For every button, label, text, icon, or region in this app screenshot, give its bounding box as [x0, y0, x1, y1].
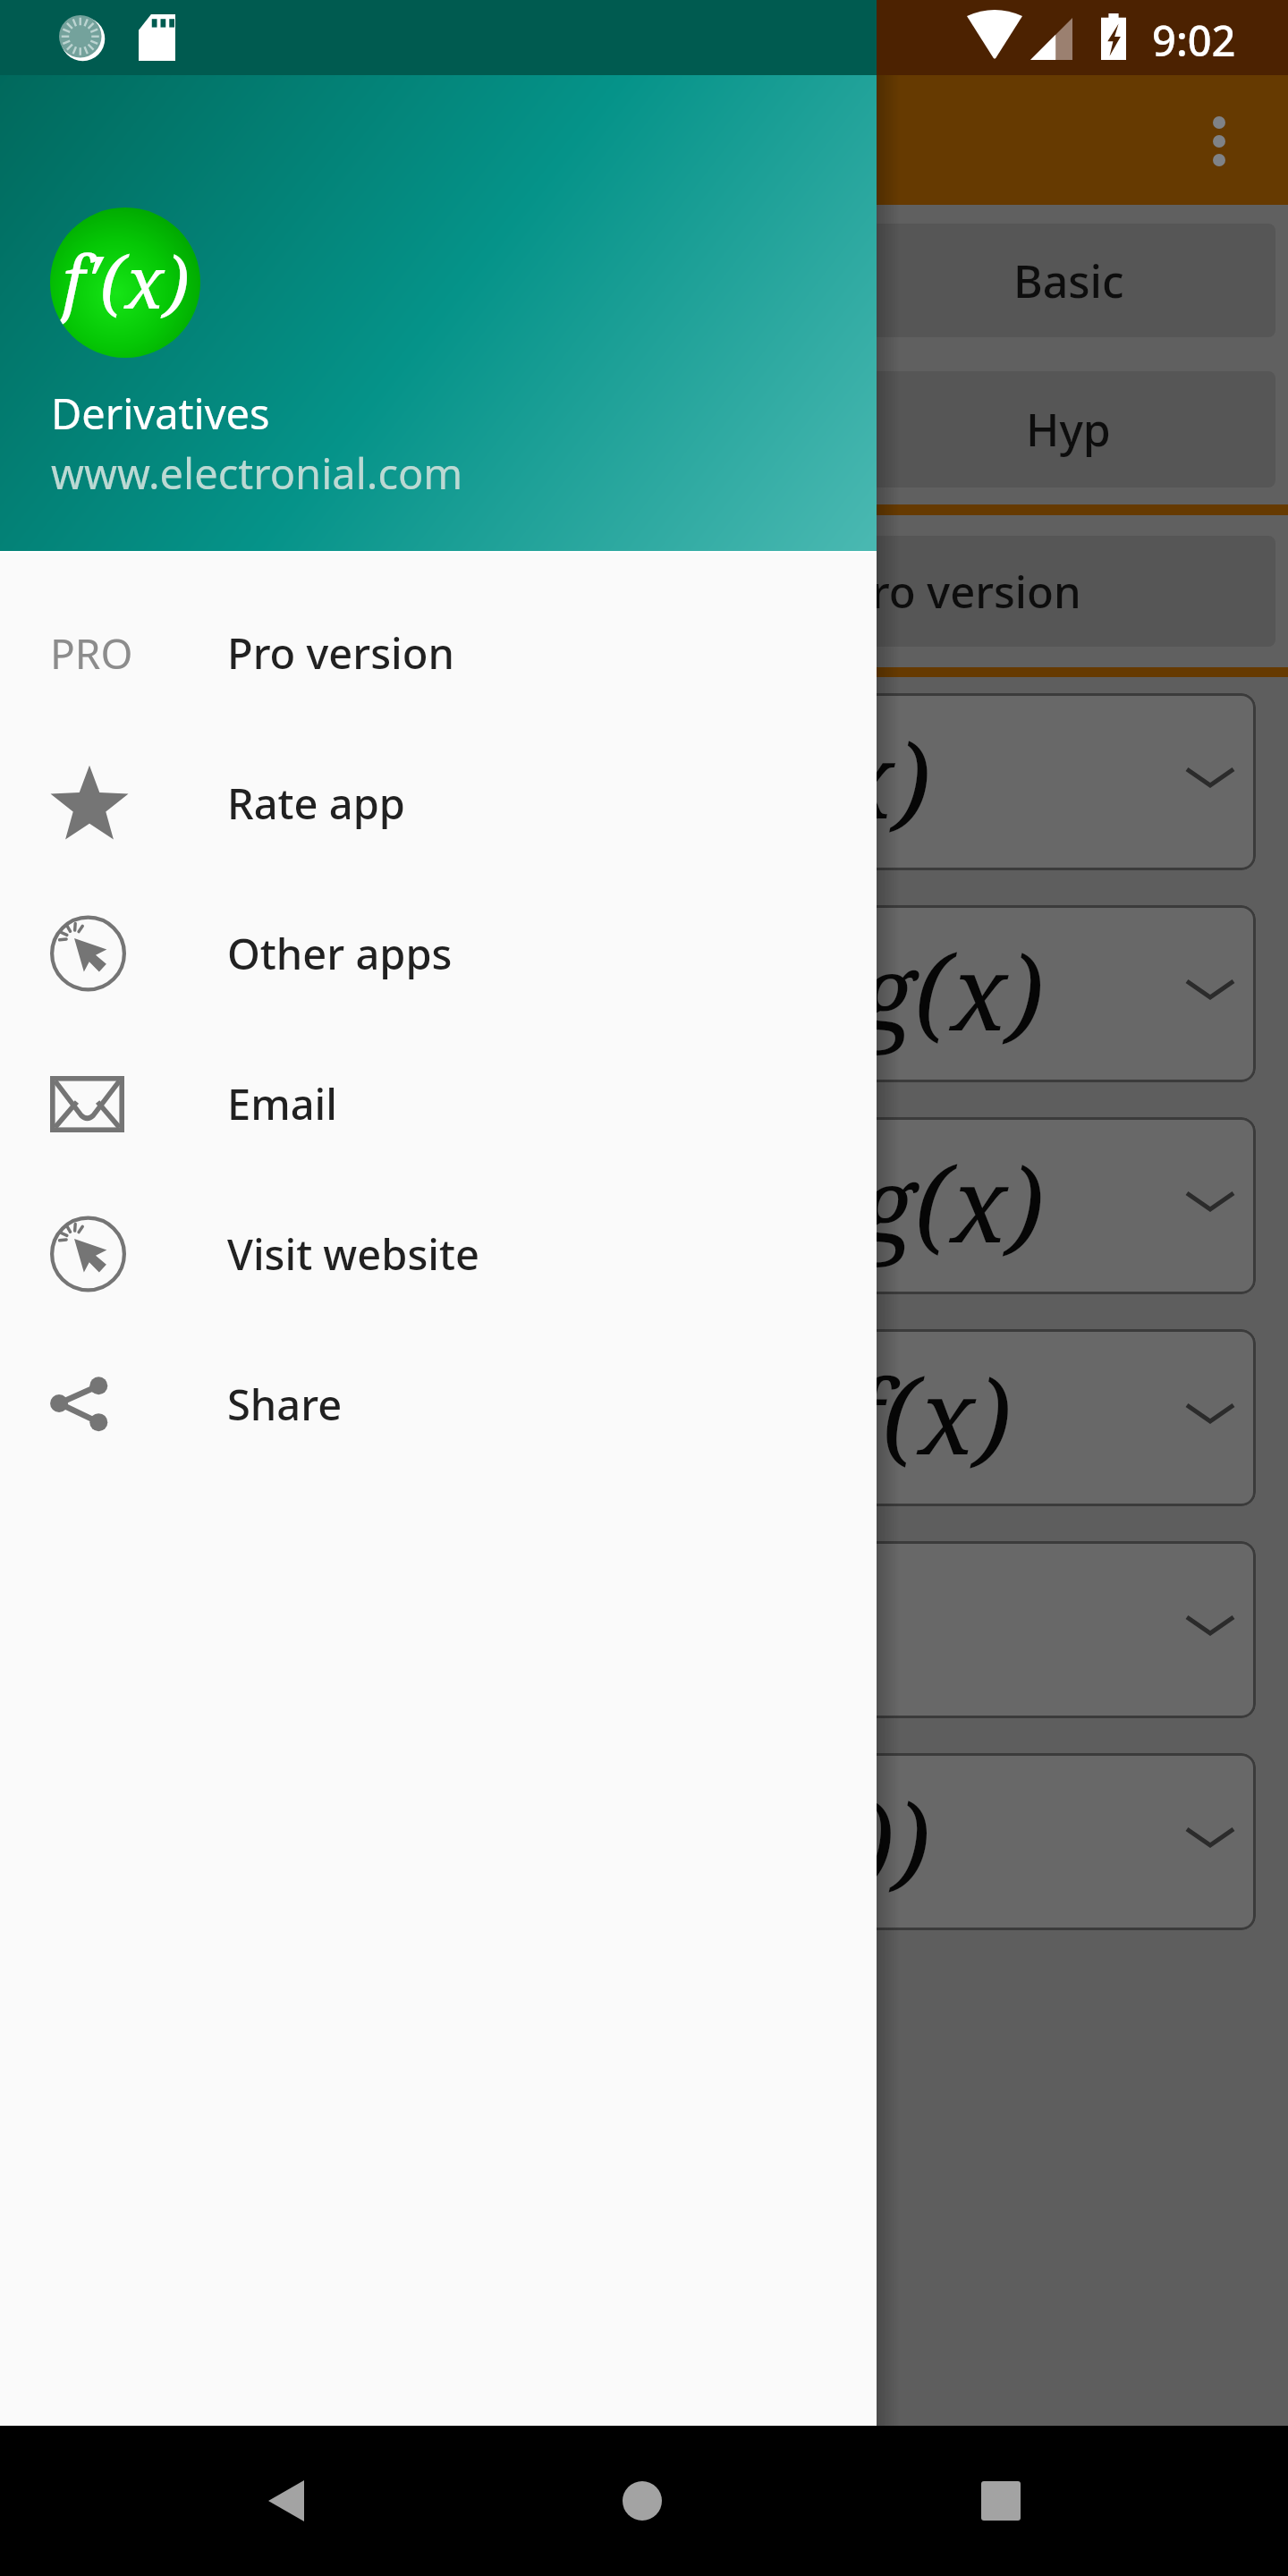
button[interactable]: More options	[1165, 88, 1273, 195]
button[interactable]: f(x)·g(x)	[32, 693, 1256, 870]
staticText: Derivatives	[51, 385, 270, 442]
button[interactable]: f(g(x))	[32, 1753, 1256, 1930]
staticText: 9:02	[1152, 12, 1236, 69]
button[interactable]: Category	[436, 224, 851, 337]
button[interactable]: f(x)+g(x)	[32, 905, 1256, 1082]
button[interactable]: Back	[215, 2426, 358, 2576]
staticText: Share	[227, 1376, 343, 1433]
staticText: Pro version	[227, 624, 454, 682]
staticText: f(x)+g(x)	[638, 919, 1044, 1061]
button[interactable]: c·f(x)	[32, 1329, 1256, 1506]
staticText: c·f(x)	[769, 1343, 1012, 1485]
button[interactable]: f(x)−g(x)	[32, 1117, 1256, 1294]
staticText: f(x)·g(x)	[553, 708, 930, 849]
button[interactable]: Category	[436, 371, 851, 487]
staticText: Visit website	[227, 1225, 479, 1283]
button[interactable]: Category	[13, 224, 426, 337]
button[interactable]: Home	[571, 2426, 714, 2576]
button[interactable]: Share	[0, 1329, 877, 1479]
button[interactable]: Other apps	[0, 878, 877, 1029]
button[interactable]: Visit website	[0, 1179, 877, 1329]
staticText: Basic	[1013, 250, 1124, 311]
staticText: Rate app	[227, 775, 405, 832]
button[interactable]: Email	[0, 1029, 877, 1179]
button[interactable]: Pro version	[13, 536, 1275, 647]
staticText: Other apps	[227, 925, 453, 982]
staticText: f(g(x))	[639, 1767, 930, 1909]
button[interactable]: Basic	[861, 224, 1275, 337]
button[interactable]: Rate app	[0, 728, 877, 878]
staticText: f′(x)	[62, 232, 190, 329]
staticText: PRO	[50, 625, 133, 682]
staticText: Hyp	[1026, 399, 1111, 460]
button[interactable]: Category	[13, 371, 426, 487]
button[interactable]: PRO	[0, 578, 877, 728]
staticText: Email	[227, 1075, 337, 1132]
staticText: www.electronial.com	[51, 445, 463, 502]
staticText: Pro version	[844, 562, 1081, 622]
button[interactable]: Hyp	[861, 371, 1275, 487]
staticText: f(x)−g(x)	[664, 1131, 1044, 1273]
button[interactable]: Recent apps	[929, 2426, 1072, 2576]
button[interactable]: Expand rule	[32, 1541, 1256, 1718]
